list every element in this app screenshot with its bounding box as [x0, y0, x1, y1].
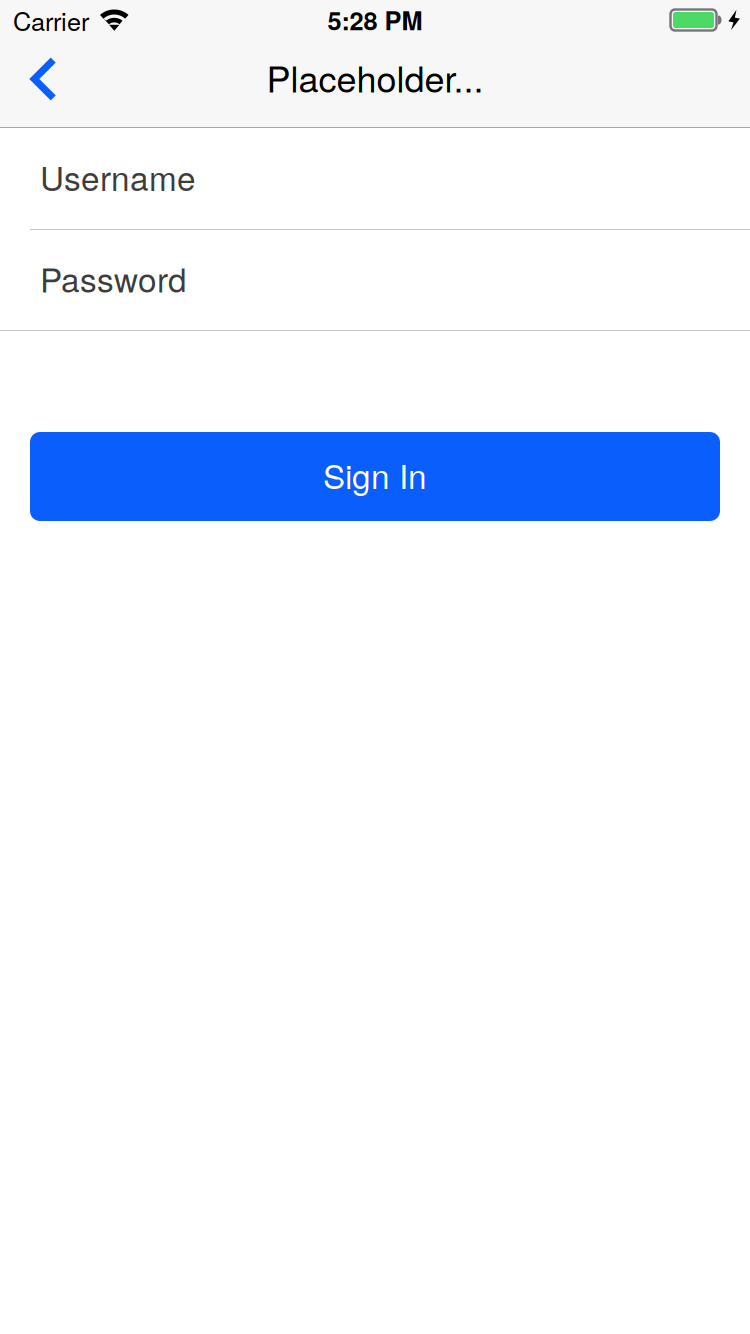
button[interactable]: Username: [0, 128, 750, 229]
button[interactable]: Back: [0, 40, 72, 127]
button[interactable]: Password: [0, 230, 750, 330]
staticText: Sign In: [323, 451, 427, 498]
staticText: 5:28 PM: [327, 2, 422, 38]
staticText: Carrier: [13, 2, 89, 38]
staticText: Password: [40, 254, 187, 302]
button[interactable]: Sign In: [30, 432, 720, 521]
staticText: Username: [40, 153, 196, 200]
staticText: Placeholder...: [266, 51, 483, 103]
